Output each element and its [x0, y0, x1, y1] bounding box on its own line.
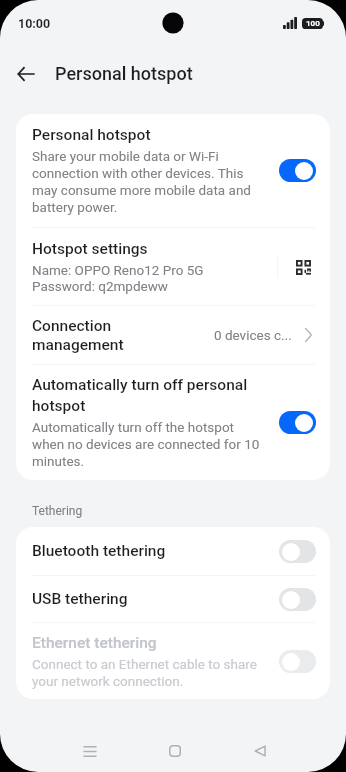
button[interactable]: Back [239, 730, 281, 772]
staticText: Personal hotspot [55, 63, 193, 84]
staticText: Ethernet tethering [32, 634, 157, 652]
staticText: Connect to an Ethernet cable to share yo… [32, 656, 271, 689]
button[interactable]: Connection management [16, 306, 330, 364]
button[interactable]: Back [8, 56, 43, 91]
button[interactable]: Share hotspot QR code [290, 254, 316, 280]
button[interactable]: Home [154, 730, 196, 772]
staticText: Personal hotspot [32, 126, 151, 144]
staticText: USB tethering [32, 590, 279, 608]
staticText: Automatically turn off the hotspot when … [32, 419, 263, 469]
staticText: Hotspot settings [32, 240, 148, 258]
button[interactable]: Hotspot settings [16, 228, 330, 305]
button[interactable]: Automatically turn off personal hotspot [16, 365, 330, 480]
button[interactable]: Off [279, 650, 316, 673]
button[interactable]: Off [279, 588, 316, 611]
staticText: Password: q2mpdeww [32, 278, 168, 294]
staticText: Bluetooth tethering [32, 542, 279, 560]
button[interactable]: Bluetooth tethering [16, 527, 330, 575]
button[interactable]: Off [279, 540, 316, 563]
staticText: 0 devices c... [214, 327, 292, 343]
staticText: 10:00 [18, 16, 51, 31]
button[interactable]: Recent apps [69, 730, 111, 772]
button[interactable]: On [279, 159, 316, 182]
button[interactable]: Personal hotspot [16, 114, 330, 227]
staticText: Connection management [32, 317, 142, 354]
staticText: Tethering [32, 504, 83, 518]
button[interactable]: Ethernet tethering [16, 623, 330, 699]
staticText: 100 [306, 19, 320, 28]
staticText: Name: OPPO Reno12 Pro 5G [32, 262, 204, 278]
staticText: Automatically turn off personal hotspot [32, 376, 271, 415]
staticText: Share your mobile data or Wi-Fi connecti… [32, 148, 271, 215]
button[interactable]: On [279, 411, 316, 434]
button[interactable]: USB tethering [16, 576, 330, 622]
